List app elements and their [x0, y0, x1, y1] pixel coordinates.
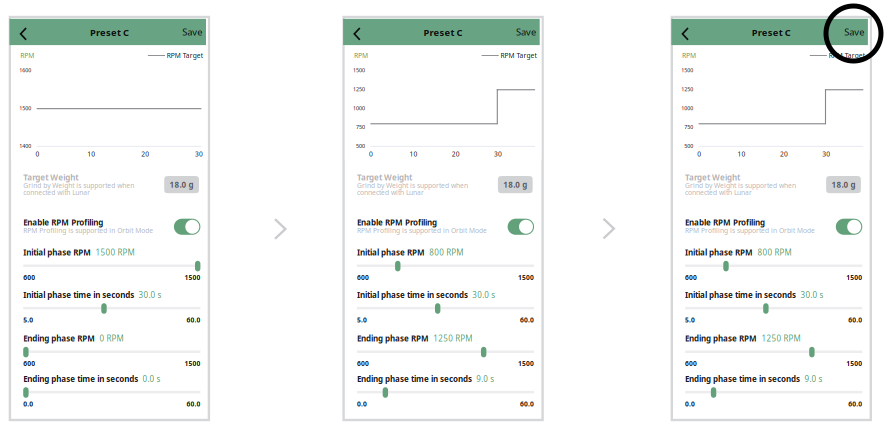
- button[interactable]: Save: [841, 19, 868, 45]
- staticText: 1500: [518, 273, 534, 282]
- staticText: 1250: [681, 86, 693, 93]
- staticText: 9.0 s: [804, 374, 822, 384]
- staticText: 1500: [846, 273, 862, 282]
- staticText: 18.0 g: [170, 179, 194, 190]
- staticText: Initial phase time in seconds: [23, 290, 134, 300]
- staticText: 60.0: [520, 399, 534, 408]
- staticText: RPM Profiling is supported in Orbit Mode: [357, 226, 487, 235]
- button[interactable]: Enable RPM Profiling: [174, 219, 200, 235]
- staticText: 1500 RPM: [96, 247, 135, 258]
- staticText: 800 RPM: [429, 247, 463, 258]
- staticText: Ending phase RPM: [685, 333, 757, 344]
- staticText: Preset C: [752, 26, 791, 39]
- staticText: 600: [23, 273, 35, 282]
- staticText: 600: [685, 273, 697, 282]
- button[interactable]: Back: [18, 25, 32, 42]
- staticText: 0: [369, 150, 373, 158]
- staticText: Target Weight: [685, 172, 740, 183]
- staticText: RPM Target: [829, 51, 865, 60]
- staticText: RPM Target: [500, 51, 536, 60]
- staticText: Ending phase RPM: [357, 333, 429, 344]
- staticText: 600: [357, 273, 369, 282]
- staticText: Initial phase time in seconds: [685, 290, 796, 300]
- staticText: 60.0: [848, 315, 862, 324]
- staticText: Enable RPM Profiling: [357, 217, 437, 228]
- staticText: 1000: [681, 105, 693, 112]
- staticText: 5.0: [23, 315, 33, 324]
- staticText: 1500: [681, 67, 693, 74]
- staticText: 0: [35, 150, 39, 158]
- staticText: Grind by Weight is supported when: [685, 181, 796, 190]
- staticText: 1400: [19, 142, 31, 149]
- staticText: 10: [738, 150, 746, 158]
- staticText: 60.0: [186, 315, 200, 324]
- staticText: 0.0 s: [143, 374, 161, 384]
- staticText: 30: [822, 150, 830, 158]
- staticText: 0.0: [685, 399, 695, 408]
- staticText: 1500: [846, 359, 862, 368]
- staticText: 1500: [518, 359, 534, 368]
- staticText: Save: [516, 26, 536, 38]
- staticText: Enable RPM Profiling: [23, 217, 103, 228]
- staticText: 600: [23, 359, 35, 368]
- staticText: RPM Profiling is supported in Orbit Mode: [23, 226, 153, 235]
- staticText: 1500: [184, 273, 200, 282]
- staticText: 20: [780, 150, 788, 158]
- staticText: 1500: [19, 105, 31, 112]
- staticText: 0 RPM: [100, 333, 124, 344]
- staticText: Save: [182, 26, 202, 38]
- staticText: Grind by Weight is supported when: [357, 181, 468, 190]
- staticText: 1500: [353, 67, 365, 74]
- staticText: 30.0 s: [472, 290, 495, 300]
- staticText: 750: [356, 123, 365, 131]
- staticText: Target Weight: [23, 172, 78, 183]
- staticText: 30.0 s: [800, 290, 823, 300]
- staticText: 30: [195, 150, 203, 158]
- staticText: 1250 RPM: [761, 333, 800, 344]
- staticText: 30: [494, 150, 502, 158]
- staticText: Target Weight: [357, 172, 412, 183]
- staticText: 5.0: [357, 315, 367, 324]
- staticText: Enable RPM Profiling: [685, 217, 765, 228]
- staticText: 500: [684, 142, 693, 149]
- staticText: RPM: [682, 51, 696, 60]
- button[interactable]: Save: [179, 19, 206, 45]
- staticText: 0.0: [23, 399, 33, 408]
- staticText: 30.0 s: [139, 290, 162, 300]
- staticText: 1000: [353, 105, 365, 112]
- staticText: 10: [87, 150, 95, 158]
- staticText: RPM Target: [167, 51, 203, 60]
- staticText: 60.0: [848, 399, 862, 408]
- staticText: 9.0 s: [476, 374, 494, 384]
- button[interactable]: Back: [680, 25, 694, 42]
- staticText: RPM: [20, 51, 34, 60]
- staticText: 20: [452, 150, 460, 158]
- staticText: 60.0: [520, 315, 534, 324]
- button[interactable]: 18.0 g: [498, 176, 533, 193]
- button[interactable]: Save: [512, 19, 539, 45]
- staticText: 600: [357, 359, 369, 368]
- staticText: connected with Lunar: [357, 188, 424, 197]
- button[interactable]: 18.0 g: [164, 176, 199, 193]
- staticText: 0: [697, 150, 701, 158]
- staticText: 20: [141, 150, 149, 158]
- button[interactable]: Back: [352, 25, 366, 42]
- staticText: Ending phase time in seconds: [685, 374, 800, 384]
- button[interactable]: Enable RPM Profiling: [836, 219, 862, 235]
- staticText: Initial phase time in seconds: [357, 290, 468, 300]
- staticText: Ending phase time in seconds: [357, 374, 472, 384]
- staticText: Grind by Weight is supported when: [23, 181, 134, 190]
- button[interactable]: Enable RPM Profiling: [508, 219, 534, 235]
- staticText: 1600: [19, 67, 31, 74]
- staticText: 0.0: [357, 399, 367, 408]
- staticText: Initial phase RPM: [357, 247, 425, 258]
- staticText: 18.0 g: [831, 179, 855, 190]
- staticText: Preset C: [90, 26, 129, 39]
- staticText: Initial phase RPM: [685, 247, 753, 258]
- staticText: 600: [685, 359, 697, 368]
- staticText: connected with Lunar: [685, 188, 752, 197]
- staticText: 1250: [353, 86, 365, 93]
- staticText: 60.0: [186, 399, 200, 408]
- staticText: 1500: [184, 359, 200, 368]
- button[interactable]: 18.0 g: [826, 176, 861, 193]
